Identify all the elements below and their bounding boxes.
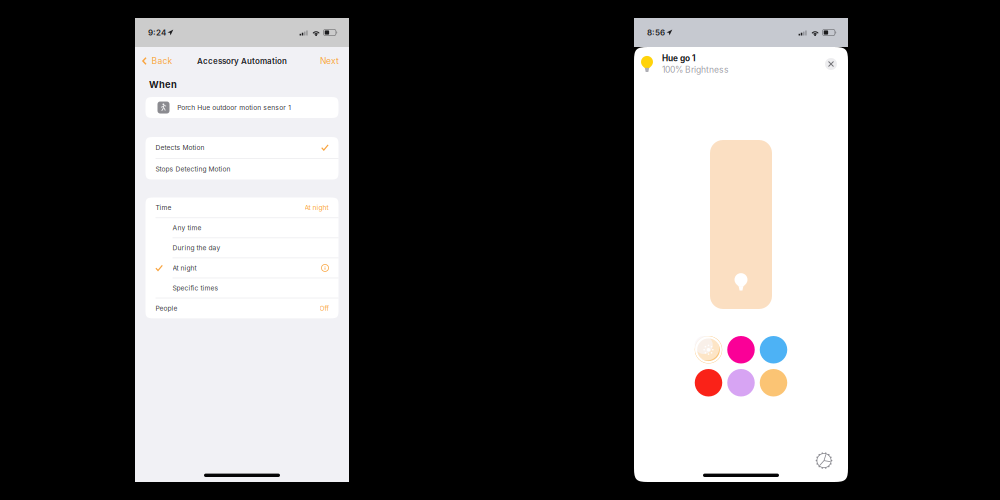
button[interactable]: Amber [760,369,787,396]
button[interactable]: Settings [813,450,835,472]
button[interactable]: Next [311,51,349,71]
button[interactable]: At night [145,258,338,278]
button[interactable]: Back [135,51,178,71]
staticText: Hue go 1 [662,53,696,63]
staticText: 100% Brightness [662,64,729,75]
staticText: When [149,79,177,90]
button[interactable]: Time [145,198,338,218]
button[interactable]: During the day [145,238,338,258]
staticText: Back [151,56,172,66]
button[interactable]: People [145,298,338,318]
button[interactable]: Pink [727,336,755,363]
staticText: Any time [172,224,201,232]
staticText: 8:56 [647,28,665,37]
staticText: At night [304,203,328,212]
staticText: People [155,304,177,312]
staticText: Detects Motion [155,143,204,152]
button[interactable]: Lavender [727,369,755,396]
button[interactable]: Any time [145,218,338,238]
button[interactable]: Blue [760,336,787,363]
button[interactable]: Red [695,369,722,396]
button[interactable]: Brightness [710,140,772,309]
button[interactable]: Detects Motion [145,137,338,158]
staticText: During the day [172,244,220,252]
button[interactable]: Close [821,54,841,74]
staticText: Next [320,56,339,66]
staticText: Specific times [172,284,218,292]
staticText: At night [172,264,196,272]
button[interactable]: Specific times [145,278,338,298]
staticText: Porch Hue outdoor motion sensor 1 [177,103,291,112]
staticText: Time [155,203,171,212]
staticText: Accessory Automation [197,56,287,66]
staticText: Off [319,304,328,312]
staticText: Stops Detecting Motion [155,165,230,173]
button[interactable]: Warm white [695,336,722,363]
button[interactable]: Porch Hue outdoor motion sensor 1 [145,97,338,118]
staticText: 9:24 [148,28,166,37]
button[interactable]: Stops Detecting Motion [145,159,338,180]
